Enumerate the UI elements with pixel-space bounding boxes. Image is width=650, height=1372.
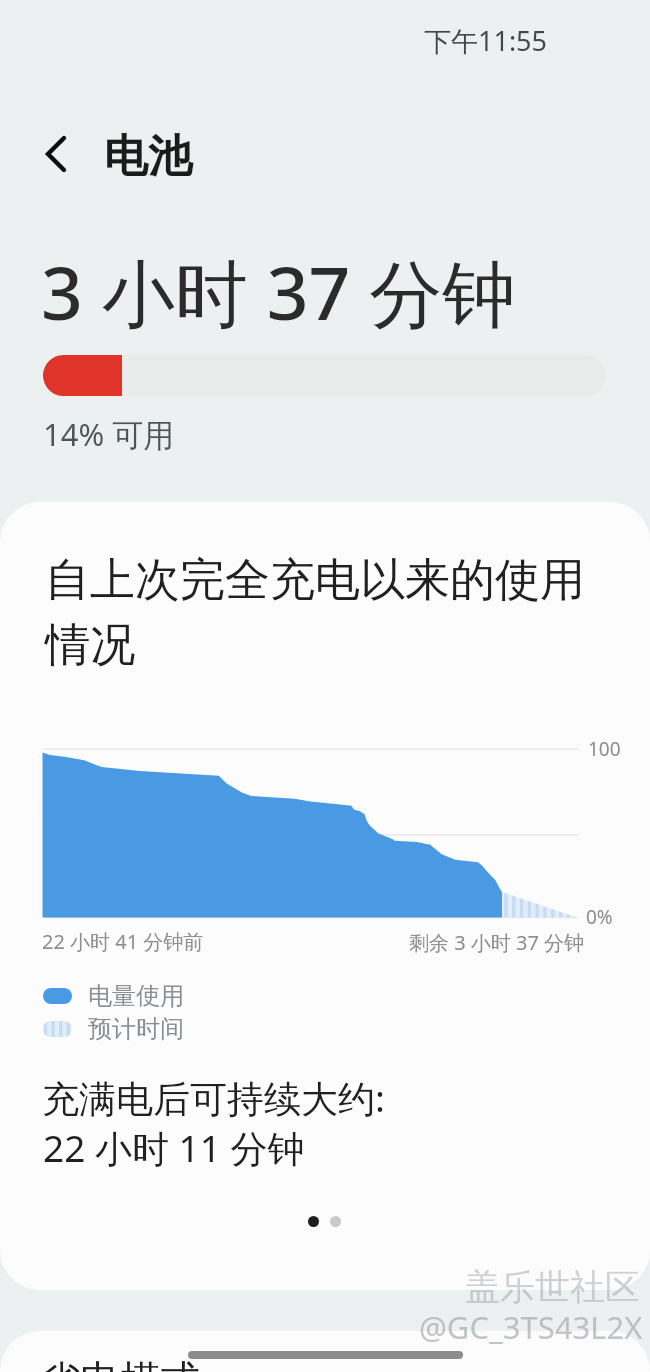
staticText: 3 小时 37 分钟	[41, 242, 516, 342]
staticText: 预计时间	[88, 1014, 184, 1044]
button[interactable]: 电量使用	[43, 981, 184, 1011]
staticText: 盖乐世社区	[465, 1265, 640, 1309]
staticText: 22 小时 11 分钟	[43, 1122, 305, 1173]
staticText: 电量使用	[88, 981, 184, 1011]
button[interactable]	[0, 1331, 650, 1372]
staticText: 自上次完全充电以来的使用情况	[45, 552, 597, 673]
button[interactable]: Page 1	[303, 1211, 323, 1231]
staticText: 100	[588, 736, 621, 762]
staticText: 充满电后可持续大约:	[42, 1072, 385, 1123]
staticText: 14% 可用	[43, 413, 175, 455]
staticText: 电池	[104, 129, 192, 184]
staticText: 省电模式	[40, 1355, 200, 1372]
button[interactable]: Page 2	[325, 1211, 345, 1231]
staticText: 22 小时 41 分钟前	[42, 928, 204, 955]
staticText: 下午11:55	[424, 22, 548, 59]
staticText: @GC_3TS43L2X	[419, 1306, 643, 1348]
staticText: 剩余 3 小时 37 分钟	[409, 929, 585, 956]
staticText: 0%	[586, 904, 613, 930]
button[interactable]	[0, 502, 650, 1290]
button[interactable]: 预计时间	[43, 1014, 184, 1044]
button[interactable]: Back	[24, 122, 88, 186]
